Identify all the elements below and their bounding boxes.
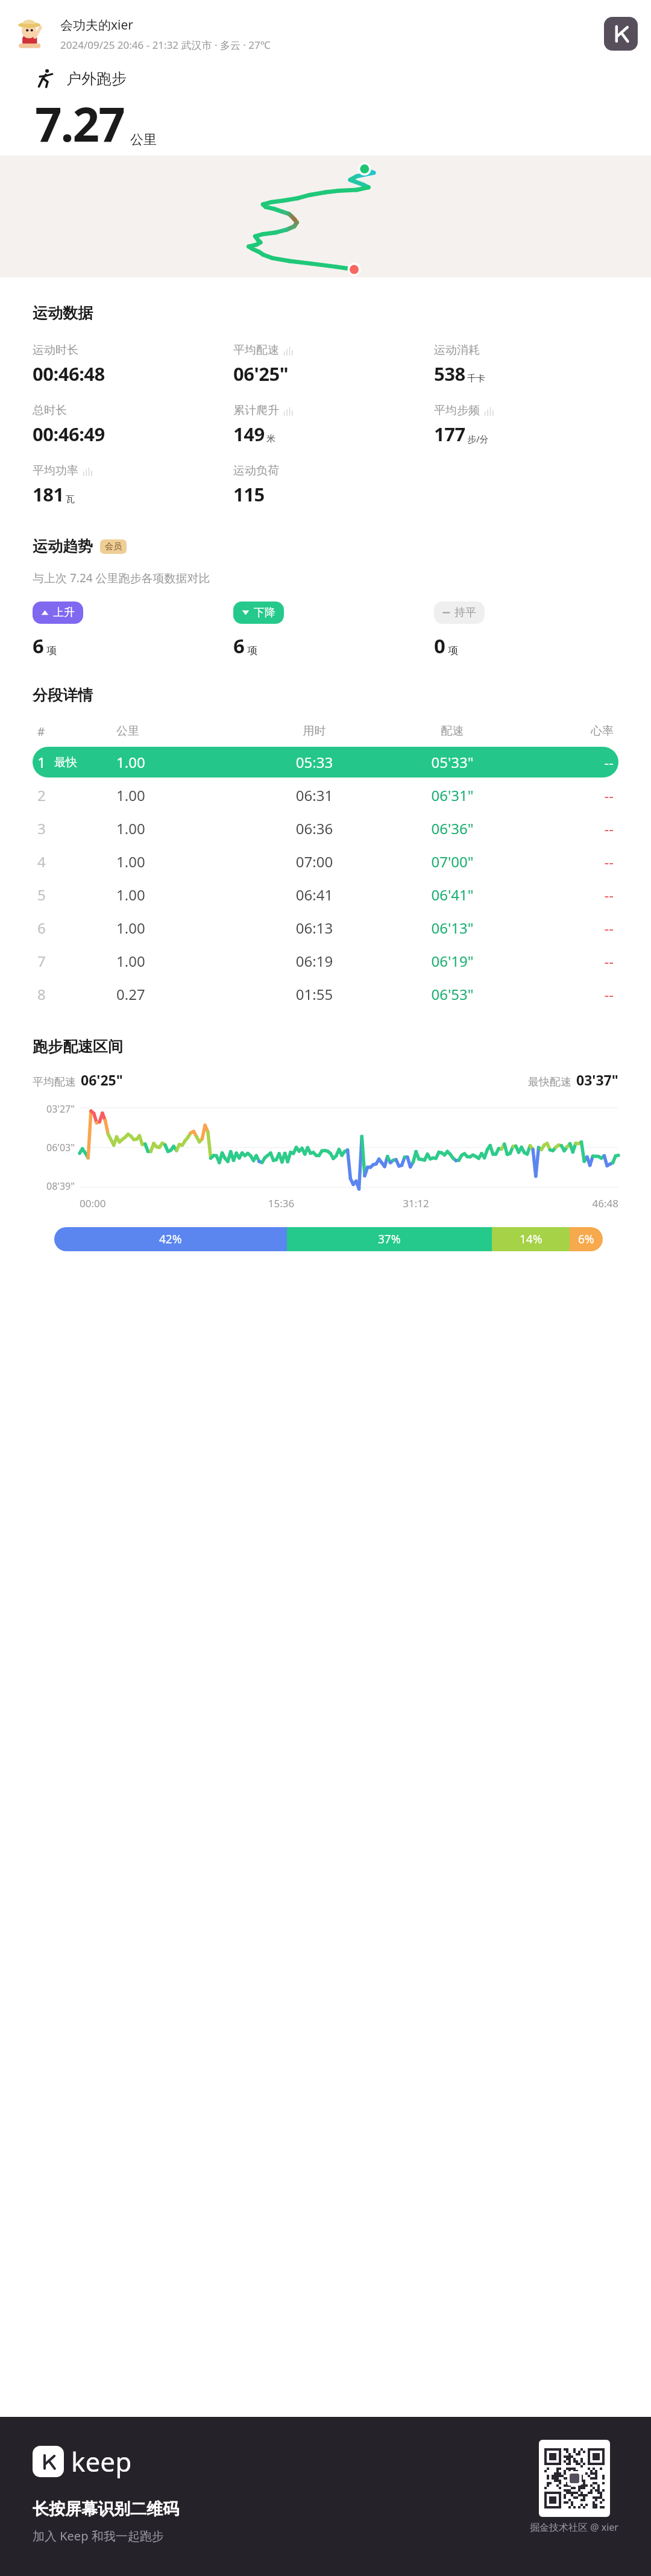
staticText: 2 — [37, 785, 46, 805]
staticText: 1.00 — [116, 852, 245, 872]
staticText: 会功夫的xier — [60, 16, 134, 34]
staticText: 1.00 — [116, 818, 245, 838]
staticText: 最快 — [54, 755, 77, 770]
staticText: -- — [521, 885, 614, 905]
staticText: 配速 — [383, 724, 521, 738]
staticText: 瓦 — [66, 494, 75, 505]
staticText: -- — [521, 818, 614, 838]
staticText: 06'41" — [383, 885, 521, 905]
staticText: 06'03" — [46, 1141, 75, 1154]
staticText: 06'36" — [383, 818, 521, 838]
button[interactable]: 平均功率 — [33, 463, 233, 507]
button[interactable]: QR code — [539, 2440, 610, 2517]
button[interactable]: 7 — [33, 946, 618, 976]
staticText: 运动趋势 — [33, 537, 93, 556]
button[interactable]: Profile avatar — [13, 16, 48, 51]
staticText: 05'33" — [383, 752, 521, 772]
staticText: 会员 — [105, 541, 122, 552]
button[interactable]: 上升 — [33, 602, 83, 624]
staticText: 6 — [233, 632, 245, 659]
staticText: -- — [521, 852, 614, 872]
staticText: 上升 — [53, 606, 75, 620]
staticText: 0.27 — [116, 984, 245, 1004]
staticText: 1.00 — [116, 885, 245, 905]
staticText: 持平 — [454, 606, 476, 620]
staticText: 46:48 — [483, 1196, 618, 1210]
staticText: 与上次 7.24 公里跑步各项数据对比 — [33, 570, 210, 586]
staticText: 加入 Keep 和我一起跑步 — [33, 2528, 164, 2544]
button[interactable]: 42% — [54, 1227, 603, 1251]
staticText: 下降 — [254, 606, 275, 620]
staticText: 06'13" — [383, 918, 521, 938]
button[interactable]: 持平 — [434, 602, 485, 624]
staticText: 42% — [159, 1231, 182, 1247]
button[interactable]: 5 — [33, 879, 618, 910]
staticText: 心率 — [521, 724, 614, 738]
button[interactable]: 6 — [33, 913, 618, 943]
staticText: 14% — [520, 1231, 542, 1247]
staticText: 06:19 — [245, 951, 383, 971]
staticText: 1.00 — [116, 951, 245, 971]
staticText: 06'19" — [383, 951, 521, 971]
staticText: 1.00 — [116, 752, 245, 772]
staticText: 4 — [37, 852, 46, 872]
button[interactable]: 平均配速 — [233, 343, 434, 386]
staticText: keep — [71, 2443, 132, 2480]
staticText: 181 — [33, 482, 64, 507]
staticText: 06'53" — [383, 984, 521, 1004]
staticText: 06'25" — [81, 1070, 123, 1089]
staticText: 运动时长 — [33, 343, 78, 357]
staticText: 1.00 — [116, 785, 245, 805]
button[interactable]: 1 — [33, 747, 618, 778]
button[interactable]: 3 — [33, 813, 618, 844]
staticText: 运动负荷 — [233, 463, 279, 478]
staticText: 6 — [33, 632, 44, 659]
button[interactable]: 下降 — [233, 602, 284, 624]
staticText: 平均功率 — [33, 463, 78, 478]
button[interactable]: 2 — [33, 780, 618, 811]
button[interactable]: 平均步频 — [434, 403, 618, 447]
staticText: 6 — [37, 918, 46, 938]
staticText: 米 — [266, 433, 275, 445]
staticText: 平均步频 — [434, 403, 480, 418]
staticText: 15:36 — [214, 1196, 348, 1210]
staticText: 06'25" — [233, 361, 289, 386]
staticText: 项 — [247, 644, 257, 657]
staticText: 31:12 — [348, 1196, 483, 1210]
staticText: -- — [521, 918, 614, 938]
button[interactable]: 总时长 — [33, 403, 233, 447]
staticText: 538 — [434, 361, 465, 386]
button[interactable]: 8 — [33, 979, 618, 1010]
staticText: 项 — [46, 644, 57, 657]
staticText: 08'39" — [46, 1180, 75, 1193]
staticText: 平均配速 — [33, 1075, 76, 1089]
staticText: -- — [521, 984, 614, 1004]
staticText: 149 — [233, 421, 265, 447]
button[interactable]: 运动消耗 — [434, 343, 618, 386]
staticText: 累计爬升 — [233, 403, 279, 418]
button[interactable]: 运动负荷 — [233, 463, 434, 507]
staticText: 06:36 — [245, 818, 383, 838]
staticText: 07:00 — [245, 852, 383, 872]
staticText: 2024/09/25 20:46 - 21:32 武汉市 · 多云 · 27℃ — [60, 38, 271, 52]
staticText: 平均配速 — [233, 343, 279, 357]
staticText: 05:33 — [245, 752, 383, 772]
staticText: 00:00 — [80, 1196, 214, 1210]
staticText: 03'37" — [576, 1070, 618, 1089]
staticText: 06:13 — [245, 918, 383, 938]
button[interactable]: 运动时长 — [33, 343, 233, 386]
staticText: -- — [521, 785, 614, 805]
staticText: 跑步配速区间 — [33, 1037, 123, 1056]
staticText: 总时长 — [33, 403, 67, 418]
button[interactable]: Keep app — [604, 17, 638, 51]
button[interactable]: 4 — [33, 846, 618, 877]
staticText: 公里 — [130, 131, 157, 148]
staticText: 06:31 — [245, 785, 383, 805]
button[interactable]: 累计爬升 — [233, 403, 434, 447]
button[interactable]: Route map — [0, 156, 651, 277]
staticText: # — [37, 724, 116, 740]
staticText: 用时 — [245, 724, 383, 738]
staticText: 5 — [37, 885, 46, 905]
staticText: 1 — [37, 752, 46, 772]
staticText: 公里 — [116, 724, 245, 738]
